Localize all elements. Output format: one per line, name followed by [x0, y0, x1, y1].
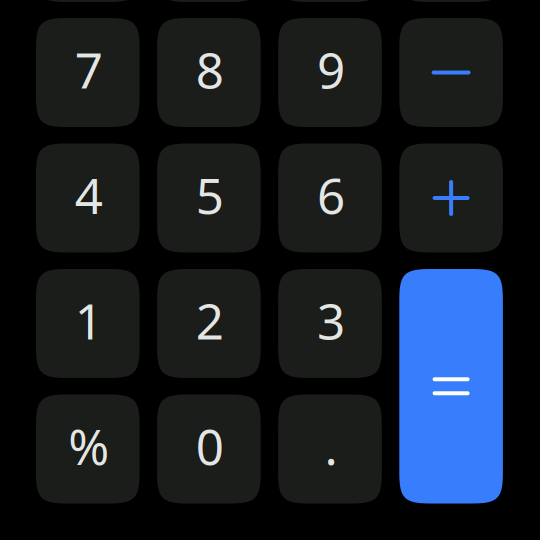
button[interactable]: Minus — [399, 18, 503, 127]
button[interactable]: 1 — [36, 269, 140, 378]
button[interactable]: 9 — [278, 18, 382, 127]
button[interactable]: Plus — [399, 143, 503, 252]
button[interactable]: 8 — [157, 18, 261, 127]
staticText: 4 — [75, 162, 103, 227]
button[interactable]: 5 — [157, 143, 261, 252]
staticText: 8 — [196, 36, 224, 102]
button[interactable]: Decimal point — [278, 394, 382, 503]
button[interactable]: 2 — [157, 269, 261, 378]
button[interactable]: 6 — [278, 143, 382, 252]
staticText: 7 — [75, 36, 103, 102]
button[interactable]: 0 — [157, 394, 261, 503]
button[interactable]: Equals — [399, 269, 503, 503]
staticText: 5 — [196, 162, 224, 227]
button[interactable]: 4 — [36, 143, 140, 252]
staticText: 1 — [75, 287, 103, 353]
staticText: 2 — [196, 287, 224, 353]
button[interactable]: 3 — [278, 269, 382, 378]
staticText: 9 — [317, 36, 345, 102]
staticText: % — [68, 413, 109, 478]
staticText: . — [324, 413, 337, 478]
staticText: 6 — [317, 162, 345, 227]
button[interactable]: 7 — [36, 18, 140, 127]
staticText: 3 — [317, 287, 345, 353]
button[interactable]: Percent — [36, 394, 140, 503]
staticText: 0 — [196, 413, 224, 478]
